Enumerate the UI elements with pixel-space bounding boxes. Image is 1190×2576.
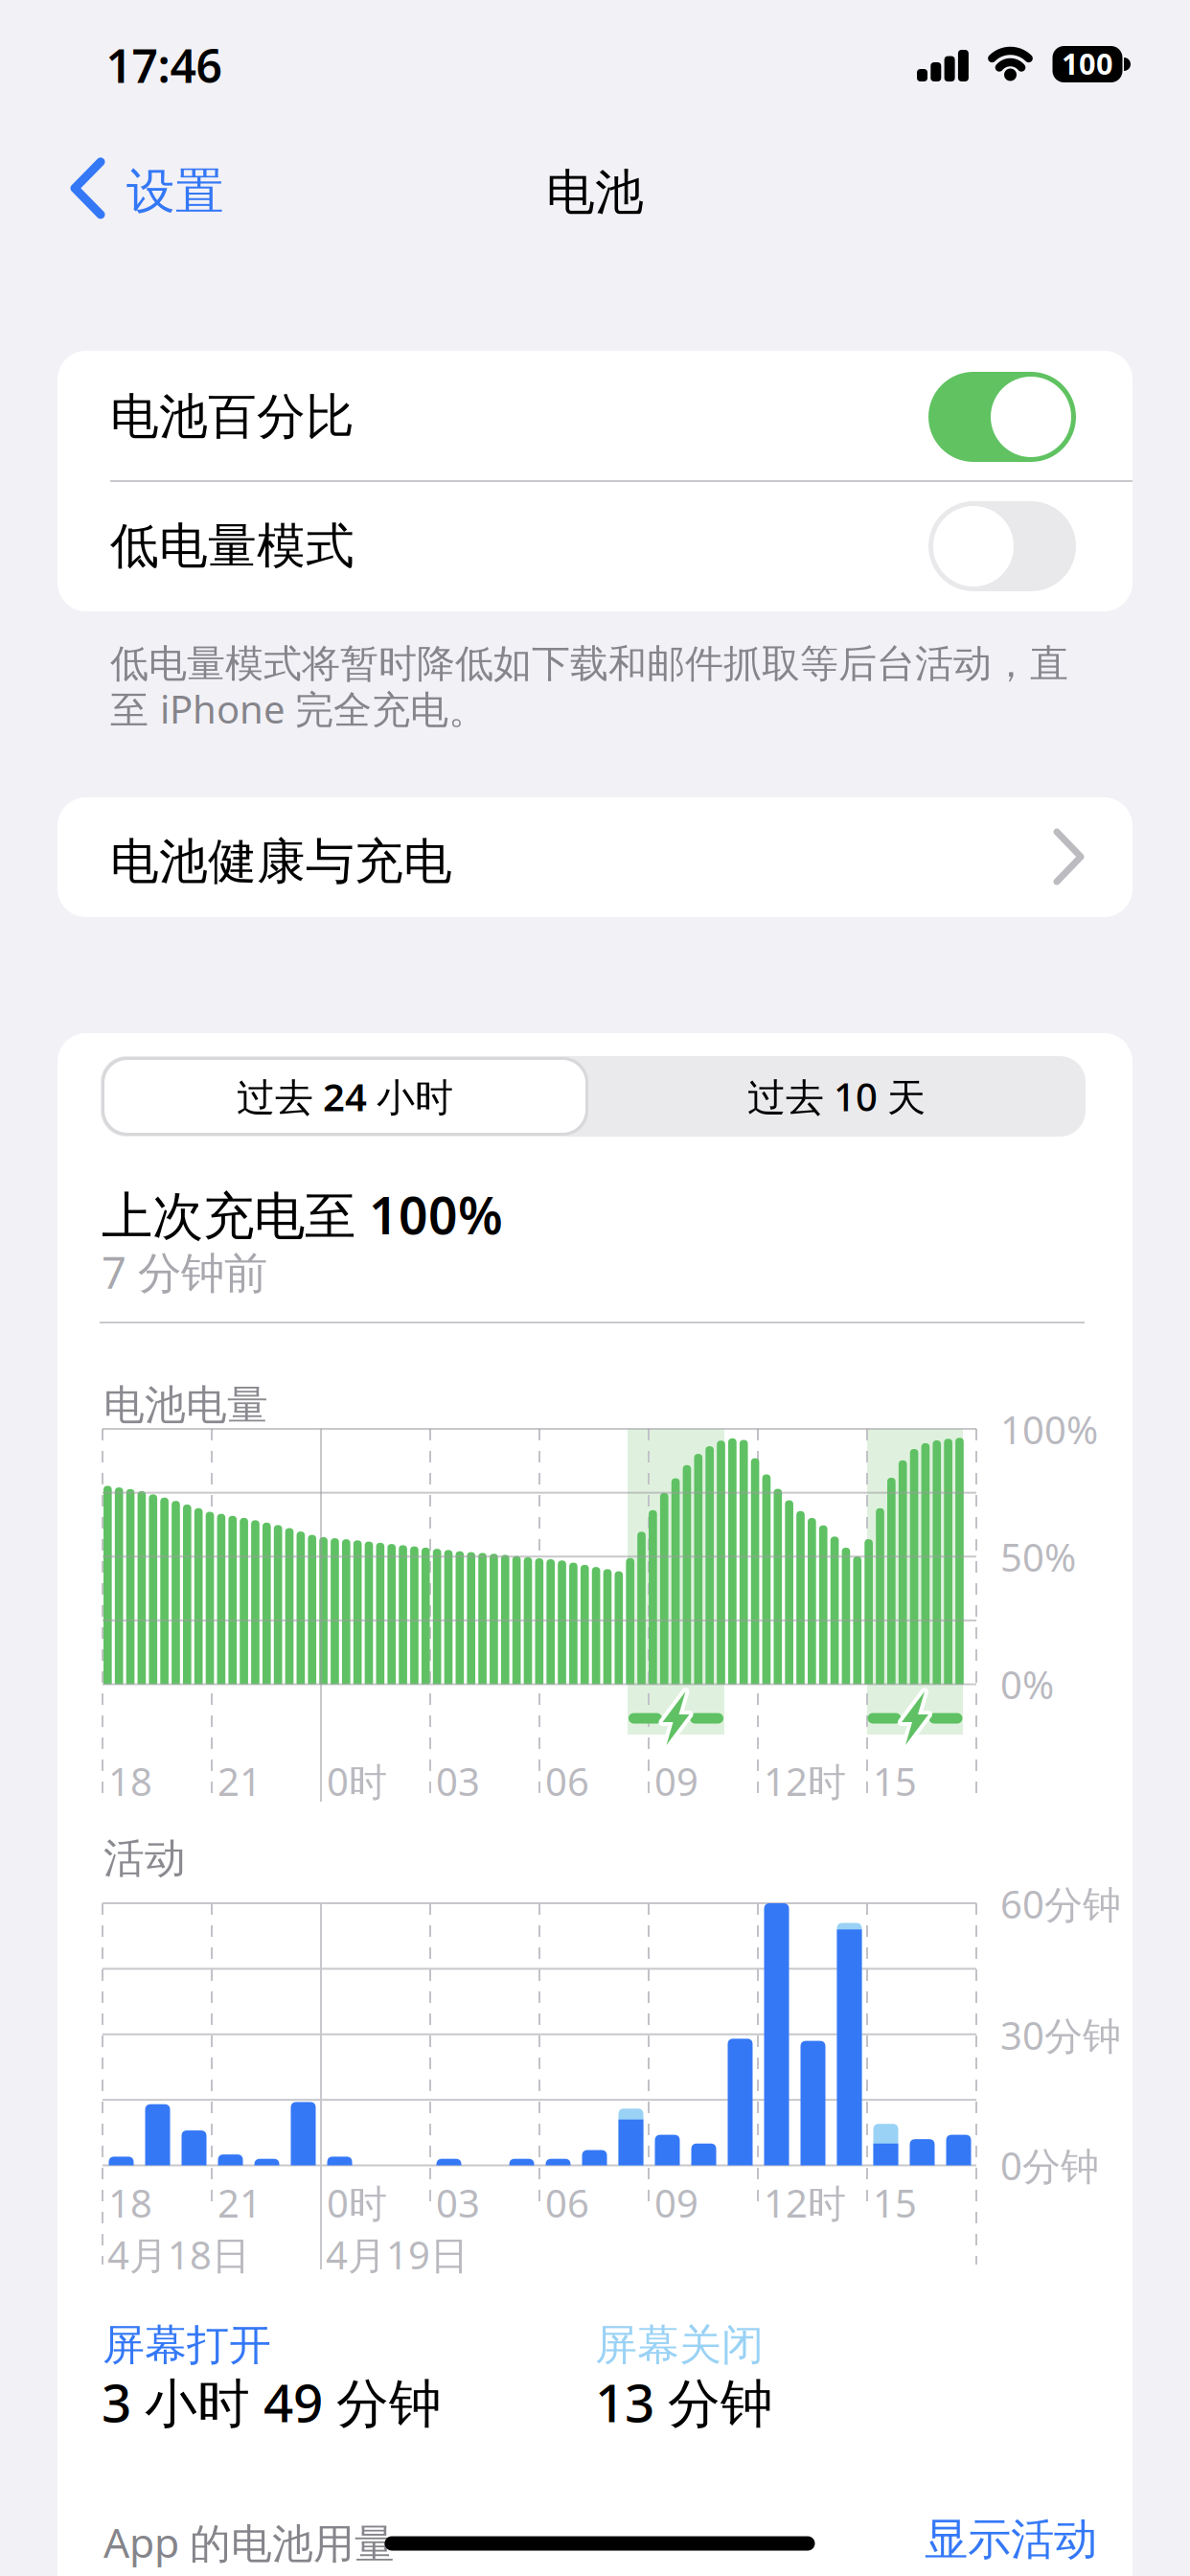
button[interactable]: 显示活动 <box>925 2513 1097 2566</box>
staticText: 设置 <box>126 162 224 221</box>
button[interactable]: 返回设置 <box>38 160 201 219</box>
staticText: 0% <box>1000 1659 1054 1710</box>
staticText: 至 iPhone 完全充电。 <box>110 683 487 734</box>
staticText: 18 <box>108 2177 152 2228</box>
staticText: 60分钟 <box>1000 1878 1121 1929</box>
staticText: 50% <box>1000 1531 1076 1582</box>
staticText: 屏幕打开 <box>103 2319 271 2371</box>
staticText: 上次充电至 100% <box>102 1181 503 1249</box>
staticText: 4月18日 <box>107 2229 250 2280</box>
staticText: 21 <box>217 1756 262 1807</box>
button[interactable]: 过去 24 小时 <box>102 1057 588 1136</box>
button[interactable]: 电池健康与充电 <box>57 797 1133 917</box>
staticText: 4月19日 <box>326 2229 469 2280</box>
staticText: 电池 <box>546 163 644 222</box>
staticText: 09 <box>654 1756 698 1807</box>
staticText: 过去 10 天 <box>747 1071 926 1122</box>
staticText: 低电量模式 <box>110 516 355 576</box>
staticText: 15 <box>873 2177 917 2228</box>
staticText: 09 <box>654 2177 698 2228</box>
staticText: 3 小时 49 分钟 <box>102 2367 442 2437</box>
staticText: 06 <box>545 2177 589 2228</box>
staticText: 100% <box>1000 1404 1098 1455</box>
staticText: 电池电量 <box>103 1380 268 1430</box>
staticText: 7 分钟前 <box>102 1243 267 1301</box>
staticText: 过去 24 小时 <box>237 1071 453 1122</box>
staticText: 15 <box>873 1756 917 1807</box>
staticText: 06 <box>545 1756 589 1807</box>
staticText: 18 <box>108 1756 152 1807</box>
staticText: 低电量模式将暂时降低如下载和邮件抓取等后台活动，直 <box>110 640 1068 687</box>
staticText: 12时 <box>764 2177 846 2228</box>
staticText: 03 <box>436 2177 480 2228</box>
staticText: 0时 <box>327 1756 387 1807</box>
button[interactable]: 低电量模式 <box>57 482 1133 611</box>
staticText: 12时 <box>764 1756 846 1807</box>
staticText: 电池百分比 <box>110 387 355 447</box>
staticText: 30分钟 <box>1000 2010 1121 2061</box>
staticText: 电池健康与充电 <box>110 832 452 891</box>
staticText: 17:46 <box>106 35 222 96</box>
button[interactable]: 电池百分比 <box>57 352 1133 482</box>
staticText: 13 分钟 <box>595 2367 773 2437</box>
button[interactable]: 过去 10 天 <box>597 1060 1076 1133</box>
staticText: 显示活动 <box>925 2513 1097 2566</box>
staticText: 0时 <box>327 2177 387 2228</box>
staticText: 屏幕关闭 <box>595 2319 764 2371</box>
staticText: 21 <box>217 2177 262 2228</box>
staticText: 100 <box>1062 44 1113 83</box>
staticText: App 的电池用量 <box>103 2515 396 2569</box>
staticText: 0分钟 <box>1000 2140 1099 2191</box>
staticText: 03 <box>436 1756 480 1807</box>
staticText: 活动 <box>103 1833 186 1884</box>
